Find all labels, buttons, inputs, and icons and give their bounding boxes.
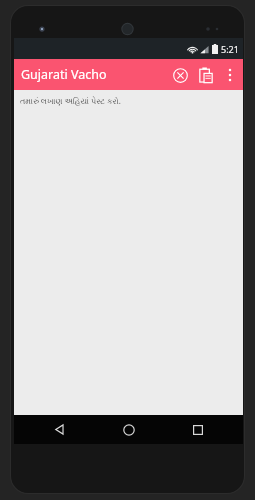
- button[interactable]: Recent apps: [173, 415, 223, 444]
- button[interactable]: More options: [219, 64, 241, 86]
- staticText: 5:21: [221, 43, 239, 55]
- button[interactable]: Clear: [167, 62, 193, 88]
- button[interactable]: Paste: [193, 62, 219, 88]
- button[interactable]: Back: [34, 415, 84, 444]
- staticText: તમારું લખાણ અહિયાં પેસ્ટ કરો.: [20, 95, 121, 106]
- button[interactable]: Home: [104, 415, 154, 444]
- staticText: Gujarati Vacho: [21, 66, 107, 83]
